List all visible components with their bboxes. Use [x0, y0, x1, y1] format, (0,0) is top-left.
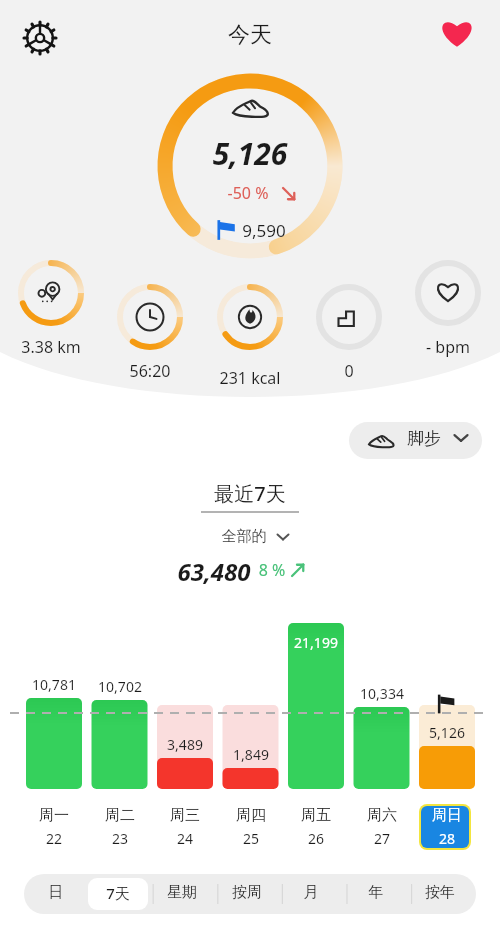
staticText: - bpm [398, 336, 498, 360]
button[interactable]: 日 [24, 874, 88, 914]
staticText: 日 [25, 883, 87, 906]
button[interactable]: Floors climbed 0 [319, 287, 379, 347]
button[interactable]: Settings [16, 14, 64, 62]
staticText: 24 [150, 829, 220, 850]
button[interactable]: 周日 28: 5,126 [419, 600, 475, 852]
button[interactable]: 7天 [89, 874, 153, 914]
staticText: 周日 [412, 806, 482, 829]
staticText: 7天 [87, 883, 149, 906]
staticText: 5,126 [402, 723, 492, 744]
button[interactable]: 周四 25: 1,849 [223, 600, 279, 852]
staticText: 星期 [151, 883, 213, 906]
staticText: 10,334 [337, 684, 427, 705]
staticText: 28 [412, 829, 482, 850]
button[interactable]: 月 [282, 874, 346, 914]
staticText: 22 [19, 829, 89, 850]
staticText: -50 % [148, 182, 348, 206]
staticText: 0 [304, 360, 394, 384]
staticText: 10,781 [9, 675, 99, 696]
staticText: 周五 [281, 806, 351, 829]
staticText: 231 kcal [190, 367, 310, 391]
staticText: 27 [347, 829, 417, 850]
staticText: 9,590 [164, 219, 364, 245]
button[interactable]: Activity type: steps [349, 422, 482, 459]
staticText: 25 [216, 829, 286, 850]
staticText: 周六 [347, 806, 417, 829]
staticText: 8 % [242, 559, 302, 583]
staticText: 脚步 [389, 428, 459, 454]
button[interactable]: Distance 3.38 km [21, 263, 81, 323]
staticText: 23 [85, 829, 155, 850]
staticText: 按年 [409, 883, 471, 906]
button[interactable]: 按年 [412, 874, 476, 914]
staticText: 63,480 [139, 555, 289, 591]
staticText: 5,126 [150, 133, 350, 178]
button[interactable]: 周五 26: 21,199 [288, 600, 344, 852]
button[interactable]: Heart rate [418, 263, 478, 323]
staticText: 21,199 [271, 633, 361, 654]
staticText: 3,489 [140, 735, 230, 756]
staticText: 56:20 [90, 360, 210, 384]
button[interactable]: 星期 [153, 874, 217, 914]
button[interactable]: Duration 56:20 [120, 287, 180, 347]
button[interactable]: Filter: all [204, 525, 296, 551]
button[interactable]: Steps today 5,126 [158, 74, 342, 258]
staticText: 3.38 km [0, 336, 111, 360]
staticText: 周一 [19, 806, 89, 829]
staticText: 周三 [150, 806, 220, 829]
staticText: 月 [280, 883, 342, 906]
staticText: 全部的 [194, 527, 294, 550]
button[interactable]: 周三 24: 3,489 [157, 600, 213, 852]
button[interactable]: 年 [347, 874, 411, 914]
staticText: 10,702 [75, 677, 165, 698]
button[interactable]: Range: last 7 days [200, 480, 300, 514]
staticText: 周四 [216, 806, 286, 829]
staticText: 最近7天 [160, 480, 340, 510]
staticText: 按周 [216, 883, 278, 906]
button[interactable]: 周二 23: 10,702 [92, 600, 148, 852]
staticText: 年 [345, 883, 407, 906]
button[interactable]: Favorites [433, 8, 481, 56]
staticText: 周二 [85, 806, 155, 829]
staticText: 今天 [150, 21, 350, 54]
button[interactable]: 周六 27: 10,334 [354, 600, 410, 852]
staticText: 26 [281, 829, 351, 850]
button[interactable]: 按周 [218, 874, 282, 914]
button[interactable]: 周一 22: 10,781 [26, 600, 82, 852]
staticText: 1,849 [206, 745, 296, 766]
button[interactable]: Calories 231 kcal [220, 287, 280, 347]
